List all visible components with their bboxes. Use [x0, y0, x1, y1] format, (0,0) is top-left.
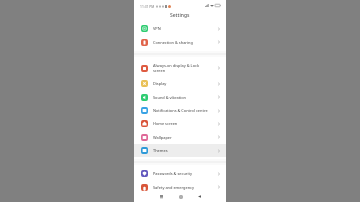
staticText: Safety and emergency: [153, 185, 216, 190]
staticText: Wallpaper: [153, 135, 216, 140]
button[interactable]: Connection & sharing: [134, 35, 226, 49]
staticText: Connection & sharing: [153, 40, 216, 45]
button[interactable]: Sound & vibration: [134, 90, 226, 104]
staticText: Always-on display & Lock screen: [153, 63, 216, 73]
button[interactable]: Passwords & security: [134, 167, 226, 180]
button[interactable]: Safety and emergency: [134, 180, 226, 194]
staticText: Notifications & Control centre: [153, 108, 216, 113]
staticText: Display: [153, 81, 216, 86]
button[interactable]: Home screen: [134, 117, 226, 130]
staticText: VPN: [153, 26, 216, 31]
button[interactable]: Notifications & Control centre: [134, 104, 226, 117]
button[interactable]: Recent apps: [157, 192, 166, 201]
button[interactable]: Themes: [134, 144, 226, 157]
staticText: 11:31 PM: [140, 4, 155, 8]
button[interactable]: Always-on display & Lock screen: [134, 59, 226, 77]
staticText: Passwords & security: [153, 171, 216, 176]
staticText: Sound & vibration: [153, 95, 216, 100]
staticText: Settings: [170, 12, 190, 19]
button[interactable]: Home: [176, 192, 185, 201]
staticText: Home screen: [153, 121, 216, 126]
button[interactable]: Back: [195, 192, 204, 201]
button[interactable]: VPN: [134, 22, 226, 35]
button[interactable]: Display: [134, 77, 226, 90]
staticText: Themes: [153, 148, 216, 153]
button[interactable]: Wallpaper: [134, 130, 226, 144]
